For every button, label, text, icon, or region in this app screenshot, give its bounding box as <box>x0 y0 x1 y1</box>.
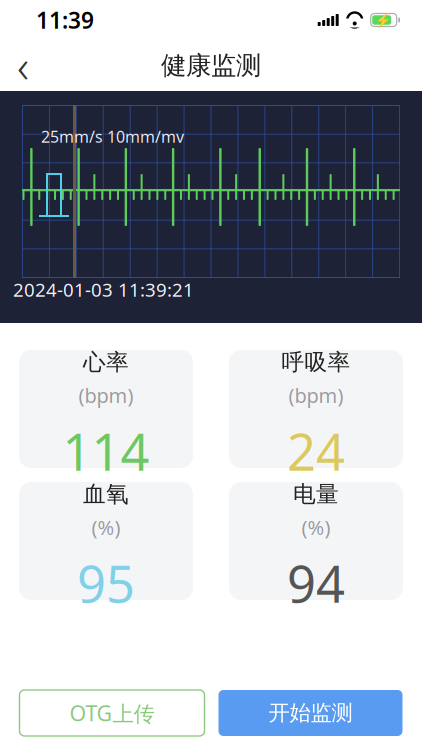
staticText: 11:39 <box>36 5 94 35</box>
staticText: 95 <box>77 550 135 617</box>
staticText: 2024-01-03 11:39:21 <box>13 277 194 302</box>
staticText: (%) <box>91 514 120 541</box>
staticText: (bpm) <box>288 382 343 409</box>
staticText: 114 <box>62 418 149 485</box>
staticText: 心率 <box>83 348 129 376</box>
staticText: 健康监测 <box>161 50 261 81</box>
staticText: 94 <box>287 550 345 617</box>
staticText: 25mm/s 10mm/mv <box>41 126 184 147</box>
staticText: OTG上传 <box>69 699 154 727</box>
staticText: 血氧 <box>83 480 129 508</box>
button[interactable]: Back <box>0 40 46 90</box>
staticText: 电量 <box>293 480 339 508</box>
staticText: 开始监测 <box>268 700 352 726</box>
staticText: (%) <box>301 514 330 541</box>
staticText: 24 <box>287 418 345 485</box>
staticText: ‹ <box>17 35 29 96</box>
button[interactable]: OTG上传 <box>19 690 204 736</box>
staticText: 呼吸率 <box>281 348 350 376</box>
button[interactable]: 开始监测 <box>218 690 402 736</box>
staticText: (bpm) <box>78 382 133 409</box>
staticText: ⚡ <box>375 12 392 28</box>
